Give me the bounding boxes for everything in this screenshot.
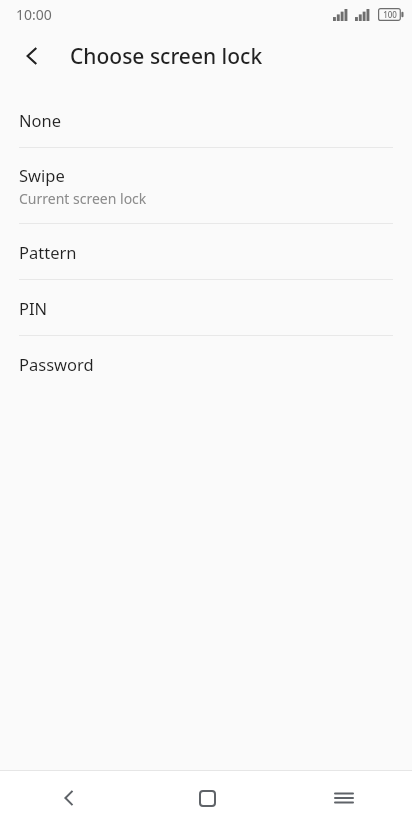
staticText: 100 xyxy=(383,9,397,20)
staticText: Pattern xyxy=(19,241,77,263)
staticText: None xyxy=(19,109,62,131)
button[interactable]: Password xyxy=(0,336,412,391)
button[interactable]: Home xyxy=(183,774,231,822)
button[interactable]: Swipe xyxy=(0,148,412,224)
button[interactable]: Back xyxy=(45,774,93,822)
staticText: 10:00 xyxy=(16,5,52,24)
staticText: Password xyxy=(19,353,94,375)
button[interactable]: Back xyxy=(8,32,56,80)
button[interactable]: PIN xyxy=(0,280,412,336)
button[interactable]: None xyxy=(0,92,412,148)
staticText: Choose screen lock xyxy=(70,42,263,71)
button[interactable]: Pattern xyxy=(0,224,412,280)
staticText: Current screen lock xyxy=(19,189,147,208)
button[interactable]: Recent apps xyxy=(320,774,368,822)
staticText: PIN xyxy=(19,297,48,319)
staticText: Swipe xyxy=(19,164,65,186)
